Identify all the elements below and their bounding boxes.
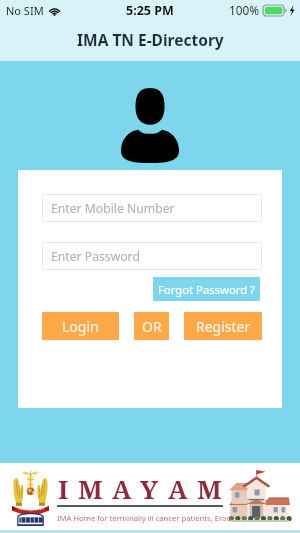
button[interactable]: Enter Password — [42, 242, 262, 270]
staticText: Enter Password — [51, 248, 140, 265]
staticText: OR — [142, 317, 162, 336]
staticText: M — [78, 471, 103, 506]
staticText: M — [197, 471, 222, 506]
staticText: Y — [140, 471, 159, 506]
staticText: I — [58, 471, 69, 506]
button[interactable]: Forgot Password ? — [153, 277, 260, 301]
other: IMAYAM logo — [12, 470, 49, 526]
staticText: Enter Mobile Number — [51, 200, 175, 217]
button[interactable]: Login — [42, 312, 119, 340]
staticText: 5:25 PM — [126, 2, 174, 19]
staticText: IMA TN E-Directory — [77, 29, 224, 50]
button[interactable]: Enter Mobile Number — [42, 194, 262, 222]
staticText: Login — [62, 317, 99, 336]
staticText: A — [168, 471, 188, 506]
other: Profile — [121, 88, 179, 163]
staticText: A — [112, 471, 132, 506]
staticText: Forgot Password ? — [158, 282, 255, 297]
staticText: IMA Home for terminally ill cancer patie… — [57, 513, 236, 523]
staticText: No SIM — [6, 3, 44, 18]
staticText: Register — [196, 317, 251, 336]
staticText: 100% — [229, 2, 260, 18]
button[interactable]: Register — [184, 312, 262, 340]
button[interactable]: OR — [134, 312, 169, 340]
